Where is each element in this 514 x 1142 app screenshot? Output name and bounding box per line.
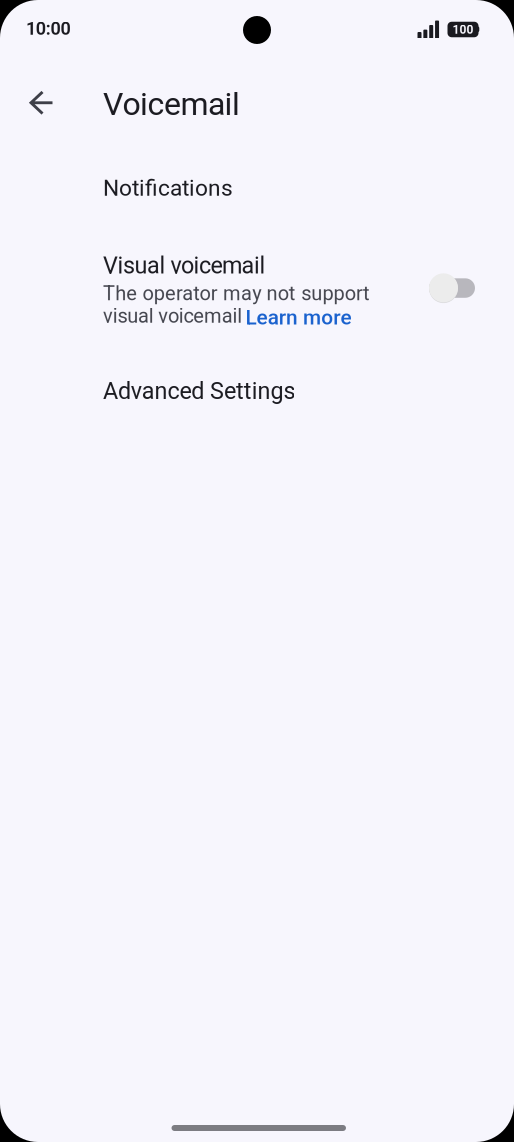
- button[interactable]: Back: [16, 74, 72, 130]
- staticText: Notifications: [103, 175, 233, 201]
- button[interactable]: Visual voicemail: [0, 252, 514, 348]
- staticText: Visual voicemail: [103, 252, 265, 279]
- staticText: 100: [452, 23, 473, 37]
- staticText: visual voicemail: [103, 304, 242, 328]
- button[interactable]: Advanced Settings: [0, 377, 514, 423]
- staticText: Advanced Settings: [103, 377, 295, 405]
- staticText: The operator may not support: [103, 282, 370, 305]
- button[interactable]: Learn more: [245, 305, 351, 330]
- staticText: Voicemail: [103, 85, 240, 123]
- staticText: Learn more: [245, 305, 351, 330]
- button[interactable]: Visual voicemail, off: [429, 273, 475, 302]
- staticText: 10:00: [26, 18, 70, 39]
